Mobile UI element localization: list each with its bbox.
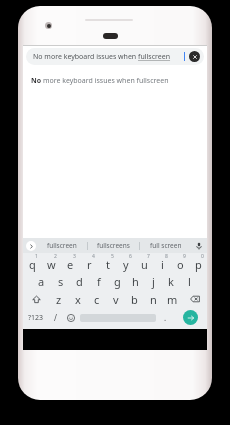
button[interactable]: No more keyboard issues when fullscreen xyxy=(23,74,207,88)
staticText: t xyxy=(106,257,110,272)
button[interactable]: fullscreen xyxy=(36,238,87,253)
staticText: No more keyboard issues when fullscreen xyxy=(31,76,169,86)
button[interactable]: x xyxy=(68,290,87,308)
staticText: b xyxy=(131,292,138,307)
staticText: o xyxy=(177,257,184,272)
staticText: full screen xyxy=(150,241,182,250)
staticText: n xyxy=(150,292,157,307)
button[interactable]: full screen xyxy=(140,238,191,253)
button[interactable]: z xyxy=(49,290,68,308)
button[interactable]: h xyxy=(126,272,144,290)
staticText: s xyxy=(58,274,64,289)
button[interactable]: More suggestions xyxy=(26,241,36,251)
staticText: k xyxy=(168,274,174,289)
staticText: d xyxy=(76,274,83,289)
staticText: f xyxy=(97,274,101,289)
staticText: w xyxy=(47,257,56,272)
staticText: q xyxy=(29,257,36,272)
button[interactable]: 3 xyxy=(61,253,80,272)
button[interactable]: Clear text xyxy=(189,51,200,62)
staticText: 5 xyxy=(111,253,114,260)
staticText: u xyxy=(141,257,148,272)
staticText: 4 xyxy=(92,253,95,260)
staticText: m xyxy=(167,292,178,307)
button[interactable]: j xyxy=(144,272,162,290)
staticText: / xyxy=(54,312,57,323)
button[interactable]: fullscreens xyxy=(88,238,139,253)
staticText: e xyxy=(67,257,74,272)
button[interactable]: s xyxy=(51,272,70,290)
staticText: z xyxy=(56,292,62,307)
button[interactable]: a xyxy=(32,272,51,290)
button[interactable]: Voice input xyxy=(191,238,207,253)
staticText: . xyxy=(164,312,167,323)
button[interactable]: v xyxy=(106,290,125,308)
staticText: 1 xyxy=(35,253,38,260)
button[interactable]: 9 xyxy=(171,253,189,272)
button[interactable]: g xyxy=(108,272,126,290)
staticText: y xyxy=(123,257,129,272)
staticText: l xyxy=(188,274,191,289)
button[interactable]: / xyxy=(48,308,63,327)
button[interactable]: l xyxy=(180,272,198,290)
button[interactable]: k xyxy=(162,272,180,290)
button[interactable]: 6 xyxy=(117,253,135,272)
staticText: p xyxy=(195,257,202,272)
staticText: 6 xyxy=(129,253,132,260)
button[interactable]: m xyxy=(163,290,182,308)
button[interactable]: 2 xyxy=(42,253,61,272)
button[interactable]: 0 xyxy=(189,253,207,272)
button[interactable]: c xyxy=(87,290,106,308)
button[interactable]: 7 xyxy=(135,253,153,272)
button[interactable]: Search xyxy=(183,310,198,325)
button[interactable]: Backspace xyxy=(182,290,207,308)
staticText: g xyxy=(114,274,121,289)
staticText: 3 xyxy=(73,253,76,260)
button[interactable]: No more keyboard issues when fullscreen xyxy=(26,48,204,65)
staticText: 7 xyxy=(147,253,150,260)
button[interactable]: ?123 xyxy=(23,308,48,327)
staticText: h xyxy=(132,274,139,289)
button[interactable]: Shift xyxy=(23,290,49,308)
staticText: 8 xyxy=(165,253,168,260)
staticText: 0 xyxy=(201,253,204,260)
button[interactable]: 5 xyxy=(99,253,117,272)
staticText: fullscreen xyxy=(47,241,77,250)
staticText: fullscreens xyxy=(97,241,130,250)
button[interactable]: 1 xyxy=(23,253,42,272)
staticText: 9 xyxy=(183,253,186,260)
staticText: r xyxy=(87,257,92,272)
staticText: c xyxy=(94,292,100,307)
staticText: j xyxy=(152,274,155,289)
staticText: i xyxy=(161,257,164,272)
staticText: v xyxy=(113,292,119,307)
button[interactable]: f xyxy=(89,272,108,290)
button[interactable]: d xyxy=(70,272,89,290)
staticText: a xyxy=(38,274,45,289)
button[interactable]: n xyxy=(144,290,163,308)
staticText: x xyxy=(75,292,81,307)
staticText: No more keyboard issues when fullscreen xyxy=(33,52,184,62)
button[interactable]: 4 xyxy=(80,253,99,272)
button[interactable]: 8 xyxy=(153,253,171,272)
staticText: 2 xyxy=(54,253,57,260)
button[interactable]: . xyxy=(158,308,173,327)
button[interactable]: b xyxy=(125,290,144,308)
button[interactable]: Emoji xyxy=(63,308,78,327)
staticText: ?123 xyxy=(28,313,44,323)
